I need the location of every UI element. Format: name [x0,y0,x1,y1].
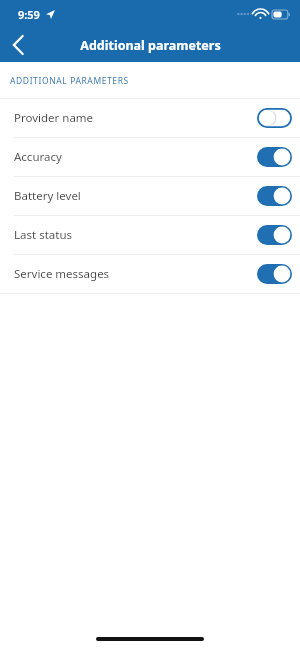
button[interactable]: Service messages [0,255,300,293]
button[interactable]: Provider name [0,99,300,137]
button[interactable]: Back [0,28,36,62]
staticText: Battery level [14,188,257,204]
staticText: 9:59 [18,7,40,22]
staticText: Additional parameters [80,37,221,54]
button[interactable]: On [257,186,292,206]
button[interactable]: Battery level [0,177,300,215]
button[interactable]: Accuracy [0,138,300,176]
staticText: Service messages [14,266,257,282]
button[interactable]: On [257,225,292,245]
button[interactable]: Off [257,108,292,128]
button[interactable]: Last status [0,216,300,254]
staticText: ADDITIONAL PARAMETERS [10,75,129,87]
button[interactable]: On [257,147,292,167]
staticText: Last status [14,227,257,243]
staticText: Accuracy [14,149,257,165]
staticText: Provider name [14,110,257,126]
button[interactable]: On [257,264,292,284]
